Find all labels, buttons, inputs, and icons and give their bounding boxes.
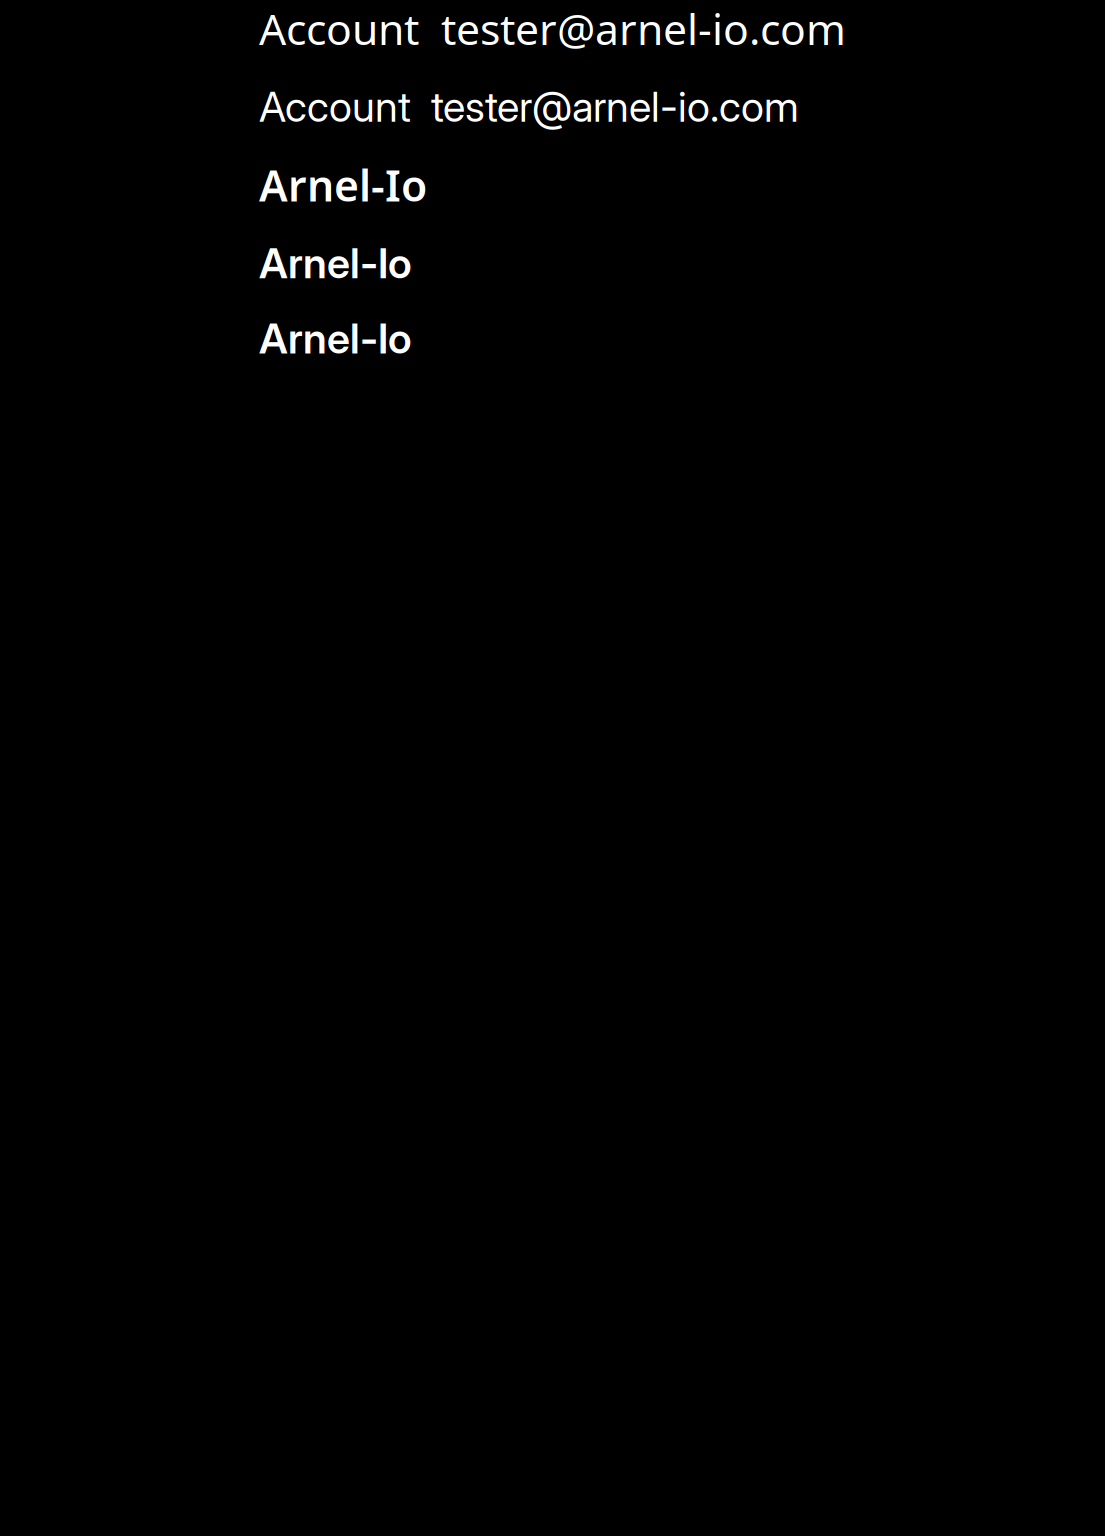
staticText: Account tester@arnel-io.com (259, 0, 846, 57)
staticText: Arnel-Io (259, 313, 412, 363)
staticText: Account tester@arnel-io.com (259, 82, 799, 132)
staticText: Arnel-Io (259, 157, 427, 213)
staticText: Arnel-Io (259, 238, 412, 288)
